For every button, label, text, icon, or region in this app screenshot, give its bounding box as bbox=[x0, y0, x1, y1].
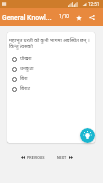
button[interactable]: Share bbox=[85, 9, 99, 26]
staticText: बिरा bbox=[20, 76, 28, 83]
button[interactable]: बिराट bbox=[7, 84, 95, 94]
staticText: बिराट bbox=[20, 86, 31, 93]
staticText: NEXT bbox=[57, 156, 67, 160]
staticText: धनकुटा bbox=[20, 66, 34, 73]
button[interactable]: NEXT bbox=[57, 152, 73, 163]
staticText: General Knowl... bbox=[2, 14, 54, 22]
button[interactable]: बिरा bbox=[7, 74, 95, 84]
staticText: 1/10 bbox=[59, 14, 70, 20]
button[interactable]: Favourite bbox=[72, 9, 85, 26]
button[interactable]: धनकुटा bbox=[7, 64, 95, 74]
button[interactable]: PREVIOUS bbox=[21, 152, 45, 163]
button[interactable]: Hint bbox=[80, 128, 95, 143]
staticText: 12:51 bbox=[88, 2, 100, 7]
staticText: पोखरा bbox=[20, 56, 32, 63]
staticText: महाभूत धरती को कुनी भागमा अवस्थित छन् । … bbox=[9, 38, 93, 50]
staticText: PREVIOUS bbox=[27, 156, 45, 160]
button[interactable]: पोखरा bbox=[7, 54, 95, 64]
